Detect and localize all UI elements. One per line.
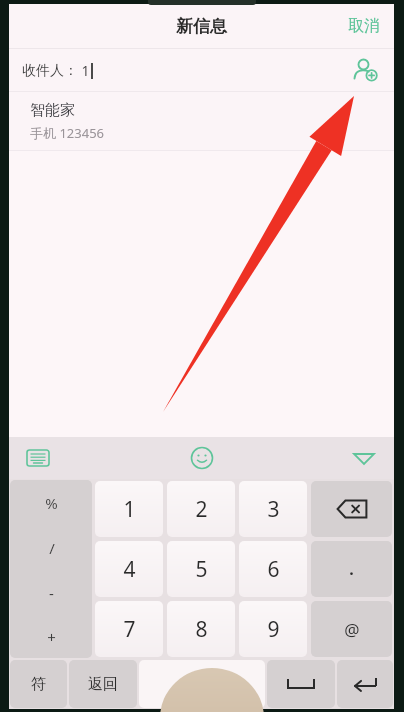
staticText: 8: [195, 615, 208, 644]
button[interactable]: Emoji: [189, 445, 215, 471]
staticText: 6: [267, 555, 280, 584]
staticText: 4: [123, 555, 136, 584]
staticText: @: [344, 618, 360, 641]
button[interactable]: 7: [95, 601, 163, 657]
button[interactable]: Space bar: [267, 660, 335, 708]
staticText: /: [49, 538, 55, 558]
button[interactable]: Enter: [337, 660, 393, 708]
button[interactable]: 符: [10, 660, 67, 708]
staticText: 1: [123, 495, 136, 524]
staticText: 3: [267, 495, 280, 524]
button[interactable]: 1: [95, 481, 163, 537]
button[interactable]: At sign: [311, 601, 392, 657]
button[interactable]: 8: [167, 601, 235, 657]
staticText: 9: [267, 615, 280, 644]
button[interactable]: 智能家: [9, 92, 394, 150]
button[interactable]: 9: [239, 601, 307, 657]
staticText: 2: [195, 495, 208, 524]
button[interactable]: Period: [311, 541, 392, 597]
button[interactable]: Add contact: [350, 55, 380, 85]
button[interactable]: %: [10, 480, 92, 658]
staticText: +: [47, 627, 56, 647]
staticText: 符: [31, 675, 46, 694]
button[interactable]: 5: [167, 541, 235, 597]
staticText: 返回: [88, 675, 118, 694]
staticText: 智能家: [30, 101, 75, 120]
button[interactable]: 4: [95, 541, 163, 597]
button[interactable]: Hide keyboard: [350, 444, 378, 472]
staticText: .: [349, 558, 354, 580]
staticText: -: [49, 583, 54, 603]
staticText: 手机 123456: [30, 124, 104, 142]
button[interactable]: 6: [239, 541, 307, 597]
staticText: 新信息: [176, 16, 227, 37]
staticText: 5: [195, 555, 208, 584]
button[interactable]: Space: [139, 660, 265, 708]
staticText: 收件人：: [22, 62, 78, 80]
staticText: 1: [81, 61, 90, 80]
button[interactable]: 3: [239, 481, 307, 537]
button[interactable]: Keyboard layout: [25, 445, 51, 471]
staticText: 7: [123, 615, 136, 644]
button[interactable]: Backspace: [311, 481, 392, 537]
button[interactable]: 返回: [69, 660, 137, 708]
staticText: %: [45, 493, 58, 513]
staticText: 取消: [348, 16, 380, 36]
button[interactable]: 2: [167, 481, 235, 537]
button[interactable]: 取消: [334, 8, 394, 44]
